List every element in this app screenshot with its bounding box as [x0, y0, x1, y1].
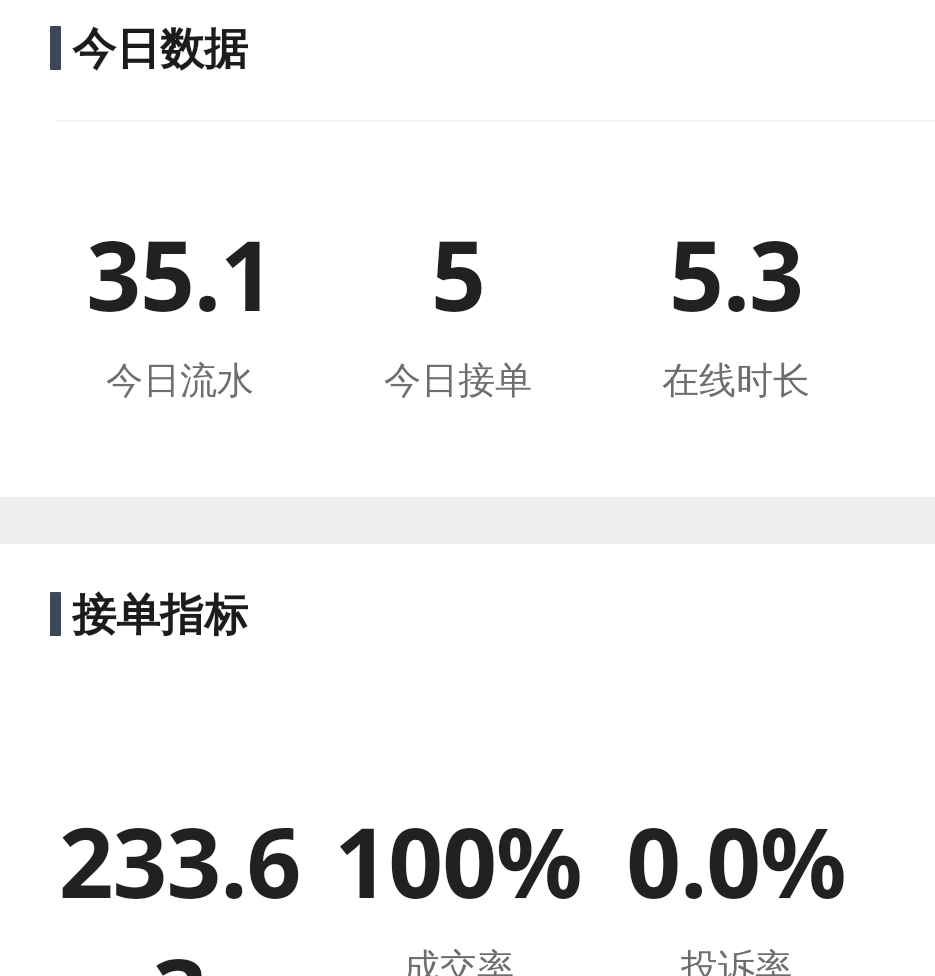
staticText: 在线时长: [662, 357, 810, 404]
button[interactable]: 35.1: [40, 208, 319, 404]
staticText: 投诉率: [681, 944, 792, 976]
staticText: 0.0%: [626, 795, 846, 926]
button[interactable]: 今日数据: [0, 22, 935, 74]
staticText: 100%: [334, 795, 582, 926]
staticText: 5: [431, 208, 485, 339]
button[interactable]: 5.3: [597, 208, 875, 404]
staticText: 5.3: [669, 208, 803, 339]
button[interactable]: 5: [319, 208, 597, 404]
button[interactable]: 接单指标: [0, 588, 935, 640]
staticText: 35.1: [86, 208, 274, 339]
staticText: 今日数据: [72, 22, 248, 74]
staticText: 今日流水: [106, 357, 254, 404]
staticText: 接单指标: [72, 588, 248, 640]
staticText: 成交率: [403, 944, 514, 976]
button[interactable]: 233.63: [40, 795, 319, 976]
button[interactable]: 0.0%: [597, 795, 875, 976]
staticText: 233.63: [40, 795, 319, 976]
button[interactable]: 100%: [319, 795, 597, 976]
staticText: 今日接单: [384, 357, 532, 404]
